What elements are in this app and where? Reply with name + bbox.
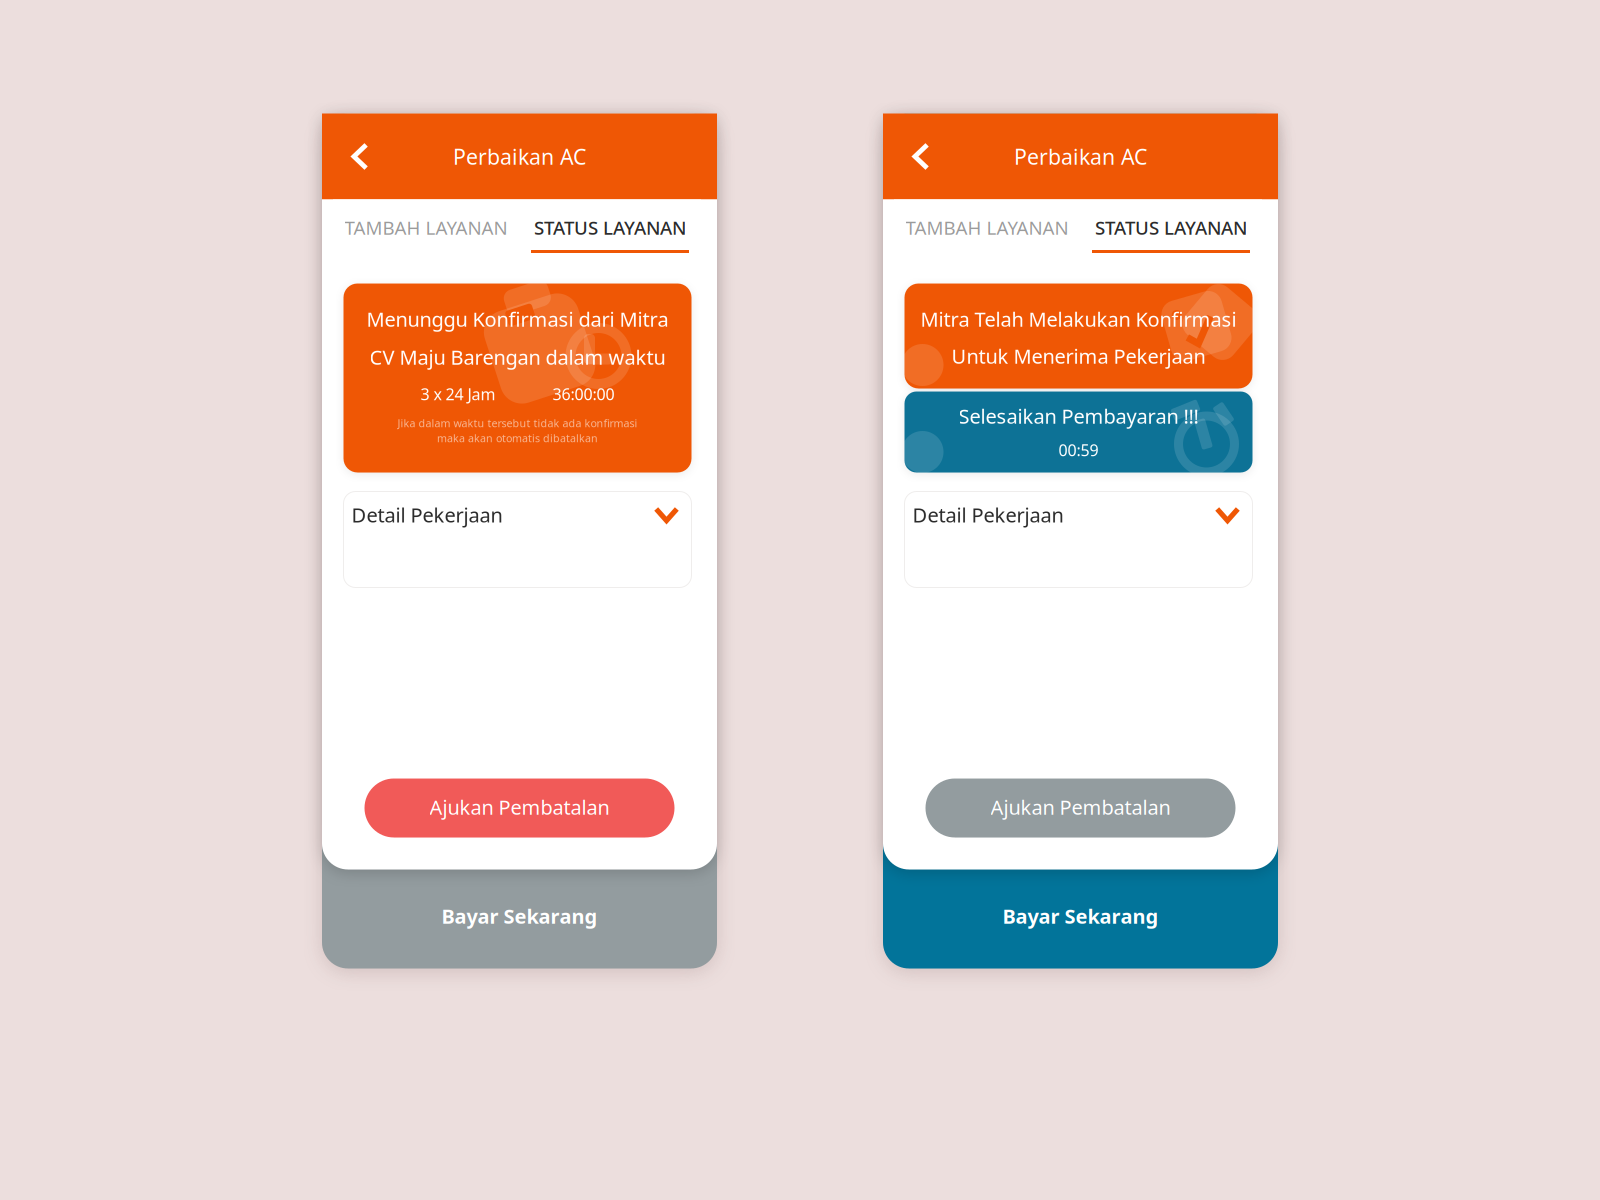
button[interactable]: TAMBAH LAYANAN [894, 199, 1080, 265]
staticText: CV Maju Barengan dalam waktu [369, 344, 665, 370]
staticText: Ajukan Pembatalan [990, 794, 1170, 820]
staticText: Ajukan Pembatalan [429, 794, 609, 820]
staticText: 3 x 24 Jam [420, 383, 495, 405]
button[interactable]: TAMBAH LAYANAN [333, 199, 519, 265]
staticText: Detail Pekerjaan [351, 501, 502, 528]
staticText: maka akan otomatis dibatalkan [437, 431, 598, 445]
staticText: Perbaikan AC [453, 142, 586, 171]
staticText: TAMBAH LAYANAN [344, 215, 507, 240]
staticText: TAMBAH LAYANAN [905, 215, 1068, 240]
button[interactable]: Bayar Sekarang [883, 869, 1278, 968]
button[interactable]: STATUS LAYANAN [1080, 199, 1262, 265]
staticText: Detail Pekerjaan [912, 501, 1063, 528]
button[interactable]: Back [896, 131, 946, 181]
staticText: STATUS LAYANAN [1095, 215, 1247, 240]
staticText: Menunggu Konfirmasi dari Mitra [366, 306, 668, 332]
staticText: Perbaikan AC [1014, 142, 1147, 171]
staticText: Jika dalam waktu tersebut tidak ada konf… [397, 416, 637, 430]
staticText: 00:59 [1058, 439, 1098, 461]
button[interactable]: Ajukan Pembatalan [925, 778, 1235, 837]
staticText: Bayar Sekarang [441, 903, 597, 929]
button[interactable]: Detail Pekerjaan [904, 491, 1252, 587]
staticText: Mitra Telah Melakukan Konfirmasi [920, 306, 1236, 332]
staticText: Selesaikan Pembayaran !!! [958, 403, 1198, 429]
button[interactable]: Back [335, 131, 385, 181]
staticText: STATUS LAYANAN [534, 215, 686, 240]
button[interactable]: Bayar Sekarang [322, 869, 717, 968]
button[interactable]: Detail Pekerjaan [343, 491, 691, 587]
button[interactable]: STATUS LAYANAN [519, 199, 701, 265]
staticText: Untuk Menerima Pekerjaan [951, 343, 1205, 369]
staticText: 36:00:00 [552, 383, 614, 405]
button[interactable]: Ajukan Pembatalan [364, 778, 674, 837]
staticText: Bayar Sekarang [1002, 903, 1158, 929]
